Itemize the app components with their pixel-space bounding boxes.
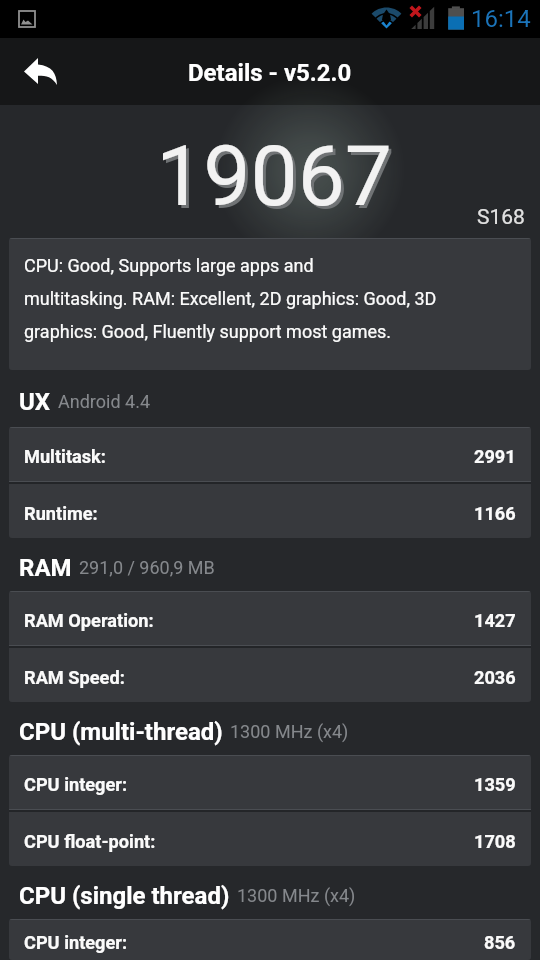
staticText: 19067 [156, 127, 393, 225]
button[interactable]: CPU integer: [9, 756, 531, 809]
staticText: Runtime: [24, 503, 98, 524]
button[interactable]: RAM Operation: [9, 592, 531, 645]
button[interactable]: Multitask: [9, 428, 531, 481]
staticText: 1708 [474, 831, 516, 852]
staticText: 1166 [474, 503, 516, 524]
button[interactable]: CPU: Good, Supports large apps and multi… [9, 238, 531, 370]
staticText: RAM Speed: [24, 667, 125, 688]
staticText: RAM Operation: [24, 610, 154, 631]
staticText: CPU integer: [24, 932, 128, 953]
staticText: 1300 MHz (x4) [237, 885, 356, 906]
button[interactable]: Back [0, 38, 72, 105]
staticText: CPU integer: [24, 774, 128, 795]
staticText: CPU float-point: [24, 831, 156, 852]
staticText: S168 [477, 205, 525, 230]
staticText: UX [19, 388, 51, 416]
staticText: 856 [484, 932, 516, 953]
staticText: 2036 [474, 667, 516, 688]
staticText: 1427 [474, 610, 516, 631]
staticText: Details - v5.2.0 [188, 59, 352, 87]
staticText: 1359 [474, 774, 516, 795]
button[interactable]: CPU integer: [9, 920, 531, 960]
staticText: Multitask: [24, 446, 106, 467]
button[interactable]: RAM Speed: [9, 648, 531, 702]
staticText: 1300 MHz (x4) [230, 721, 349, 742]
staticText: 2991 [474, 446, 516, 467]
button[interactable]: CPU float-point: [9, 812, 531, 866]
button[interactable]: Runtime: [9, 484, 531, 538]
staticText: CPU (multi-thread) [19, 718, 223, 746]
staticText: Android 4.4 [58, 391, 150, 412]
staticText: RAM [19, 554, 72, 582]
staticText: 19067 [159, 130, 396, 228]
staticText: CPU (single thread) [19, 882, 230, 910]
staticText: 291,0 / 960,9 MB [79, 557, 215, 578]
staticText: CPU: Good, Supports large apps and multi… [24, 255, 437, 343]
staticText: 16:14 [471, 5, 531, 33]
